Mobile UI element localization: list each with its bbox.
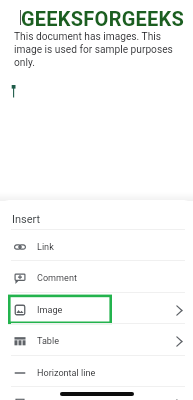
staticText: Image	[37, 305, 63, 316]
button[interactable]: Page number	[0, 387, 193, 400]
staticText: Comment	[37, 273, 77, 284]
staticText: Horizontal line	[37, 368, 96, 379]
button[interactable]: Link	[0, 230, 193, 260]
button[interactable]: Comment	[0, 261, 193, 291]
staticText: This document has images. This image is …	[14, 31, 186, 69]
staticText: Insert	[12, 213, 41, 226]
staticText: Link	[37, 242, 54, 253]
button[interactable]: Image	[0, 293, 193, 323]
staticText: Table	[37, 336, 60, 347]
button[interactable]: Table	[0, 324, 193, 354]
staticText: GEEKSFORGEEKS	[21, 7, 185, 30]
button[interactable]: Horizontal line	[0, 356, 193, 386]
